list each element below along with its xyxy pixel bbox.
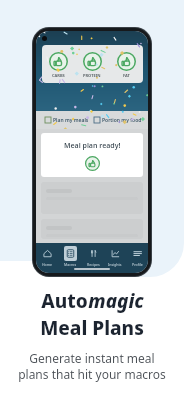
button[interactable]: Home bbox=[36, 246, 59, 267]
other: Goal met bbox=[49, 52, 68, 71]
staticText: FAT bbox=[123, 73, 130, 78]
staticText: Meal Plans bbox=[40, 315, 144, 341]
staticText: Meal plan ready! bbox=[64, 141, 121, 151]
staticText: Auto bbox=[41, 288, 88, 314]
button[interactable]: Goal met bbox=[109, 50, 143, 78]
staticText: plans that hit your macros bbox=[18, 366, 166, 382]
staticText: Recipes bbox=[87, 262, 100, 267]
staticText: Insights bbox=[108, 262, 122, 267]
staticText: CARBS bbox=[52, 73, 65, 78]
other: Goal met bbox=[85, 156, 100, 171]
staticText: magic bbox=[88, 288, 144, 314]
staticText: Generate instant meal bbox=[29, 350, 155, 366]
staticText: Macros bbox=[64, 262, 77, 267]
button[interactable]: Plan my meals bbox=[41, 111, 92, 129]
button[interactable]: Insights bbox=[104, 246, 126, 267]
staticText: Portion my food bbox=[102, 117, 142, 124]
button[interactable]: Profile bbox=[126, 246, 148, 267]
staticText: Profile bbox=[132, 262, 143, 267]
button[interactable]: Portion my food bbox=[92, 111, 143, 129]
staticText: Plan my meals bbox=[53, 117, 89, 124]
button[interactable]: Goal met bbox=[75, 50, 109, 78]
other: Goal met bbox=[83, 52, 102, 71]
button[interactable]: Macros bbox=[59, 246, 82, 267]
other: Goal met bbox=[117, 52, 136, 71]
button[interactable]: Recipes bbox=[82, 246, 104, 267]
button[interactable]: Meal plan ready! bbox=[41, 133, 143, 177]
staticText: PROTEIN bbox=[83, 73, 101, 78]
staticText: Home bbox=[42, 262, 53, 267]
button[interactable]: Goal met bbox=[42, 50, 75, 78]
